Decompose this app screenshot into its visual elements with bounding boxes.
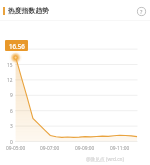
staticText: 09-05:00 [6,145,26,152]
staticText: 9 [10,92,13,99]
staticText: 0 [10,139,13,146]
staticText: 12 [7,77,13,84]
button[interactable]: 16.56 [5,40,28,51]
staticText: 热度指数趋势 [8,6,49,15]
staticText: 09-07:00 [40,145,60,152]
staticText: 15 [7,62,13,69]
staticText: @微兑点 (wrd.cn) [86,156,124,163]
staticText: 6 [10,108,13,115]
staticText: 09-09:00 [75,145,95,152]
staticText: 16.56 [9,42,25,50]
button[interactable]: Help [133,3,149,19]
staticText: ? [140,8,143,15]
staticText: 09-11:00 [110,145,130,152]
button[interactable]: 热度指数趋势 [0,0,150,21]
staticText: 3 [10,123,13,130]
